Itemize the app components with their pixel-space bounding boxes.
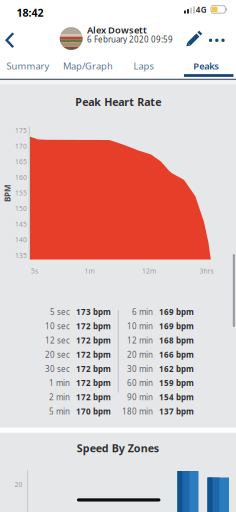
staticText: Summary	[6, 60, 49, 72]
staticText: Speed By Zones	[77, 441, 159, 455]
staticText: 172 bpm	[76, 363, 111, 374]
staticText: 4G	[196, 4, 207, 15]
staticText: BPM	[0, 188, 16, 198]
staticText: Peaks	[193, 60, 219, 72]
staticText: 172 bpm	[76, 349, 111, 360]
staticText: 12 sec	[45, 335, 70, 346]
staticText: 90 min	[127, 392, 153, 402]
staticText: 160	[15, 173, 27, 182]
button[interactable]: Map/Graph	[59, 55, 117, 77]
staticText: 173 bpm	[76, 307, 111, 317]
button[interactable]: Summary	[0, 55, 56, 77]
staticText: 180 min	[122, 406, 153, 417]
staticText: 2 min	[49, 392, 70, 402]
staticText: 150	[15, 204, 27, 213]
staticText: 5s	[31, 267, 38, 275]
button[interactable]: Laps	[124, 55, 164, 77]
staticText: 09:59	[151, 34, 173, 45]
staticText: 1 min	[49, 378, 70, 388]
staticText: 12m	[142, 267, 156, 275]
staticText: 162 bpm	[159, 363, 194, 374]
staticText: 169 bpm	[159, 307, 194, 317]
staticText: 159 bpm	[159, 378, 194, 388]
button[interactable]: Edit	[184, 30, 202, 48]
staticText: 172 bpm	[76, 321, 111, 331]
staticText: 30 min	[127, 363, 153, 374]
staticText: 12 min	[127, 335, 153, 346]
staticText: 20	[14, 480, 22, 489]
staticText: 170 bpm	[76, 406, 111, 417]
staticText: 175	[15, 126, 27, 135]
staticText: 20 sec	[45, 349, 70, 360]
staticText: 6 February 2020	[87, 34, 149, 45]
staticText: 1m	[84, 267, 94, 275]
staticText: 135	[15, 251, 27, 260]
staticText: 145	[15, 220, 27, 229]
button[interactable]: Back	[2, 29, 18, 51]
staticText: Alex Dowsett	[87, 24, 147, 36]
staticText: 172 bpm	[76, 392, 111, 402]
staticText: 172 bpm	[76, 378, 111, 388]
button[interactable]: Peaks	[183, 55, 235, 81]
staticText: 165	[15, 157, 27, 166]
staticText: Map/Graph	[63, 60, 113, 72]
staticText: 172 bpm	[76, 335, 111, 346]
staticText: 20 min	[127, 349, 153, 360]
staticText: 168 bpm	[159, 335, 194, 346]
staticText: 154 bpm	[159, 392, 194, 402]
staticText: 10 min	[127, 321, 153, 331]
staticText: 5 min	[49, 406, 70, 417]
staticText: 166 bpm	[159, 349, 194, 360]
staticText: 5 sec	[50, 307, 70, 317]
button[interactable]: More	[207, 35, 226, 45]
staticText: 137 bpm	[159, 406, 194, 417]
staticText: 140	[15, 235, 27, 244]
staticText: 169 bpm	[159, 321, 194, 331]
staticText: 170	[15, 142, 27, 151]
staticText: 60 min	[127, 378, 153, 388]
staticText: 10 sec	[45, 321, 70, 331]
staticText: Peak Heart Rate	[75, 95, 161, 109]
staticText: 18:42	[16, 5, 43, 20]
staticText: Laps	[134, 60, 154, 72]
staticText: 6 min	[132, 307, 153, 317]
staticText: 3hrs	[199, 267, 213, 275]
staticText: 155	[15, 188, 27, 197]
staticText: 30 sec	[45, 363, 70, 374]
